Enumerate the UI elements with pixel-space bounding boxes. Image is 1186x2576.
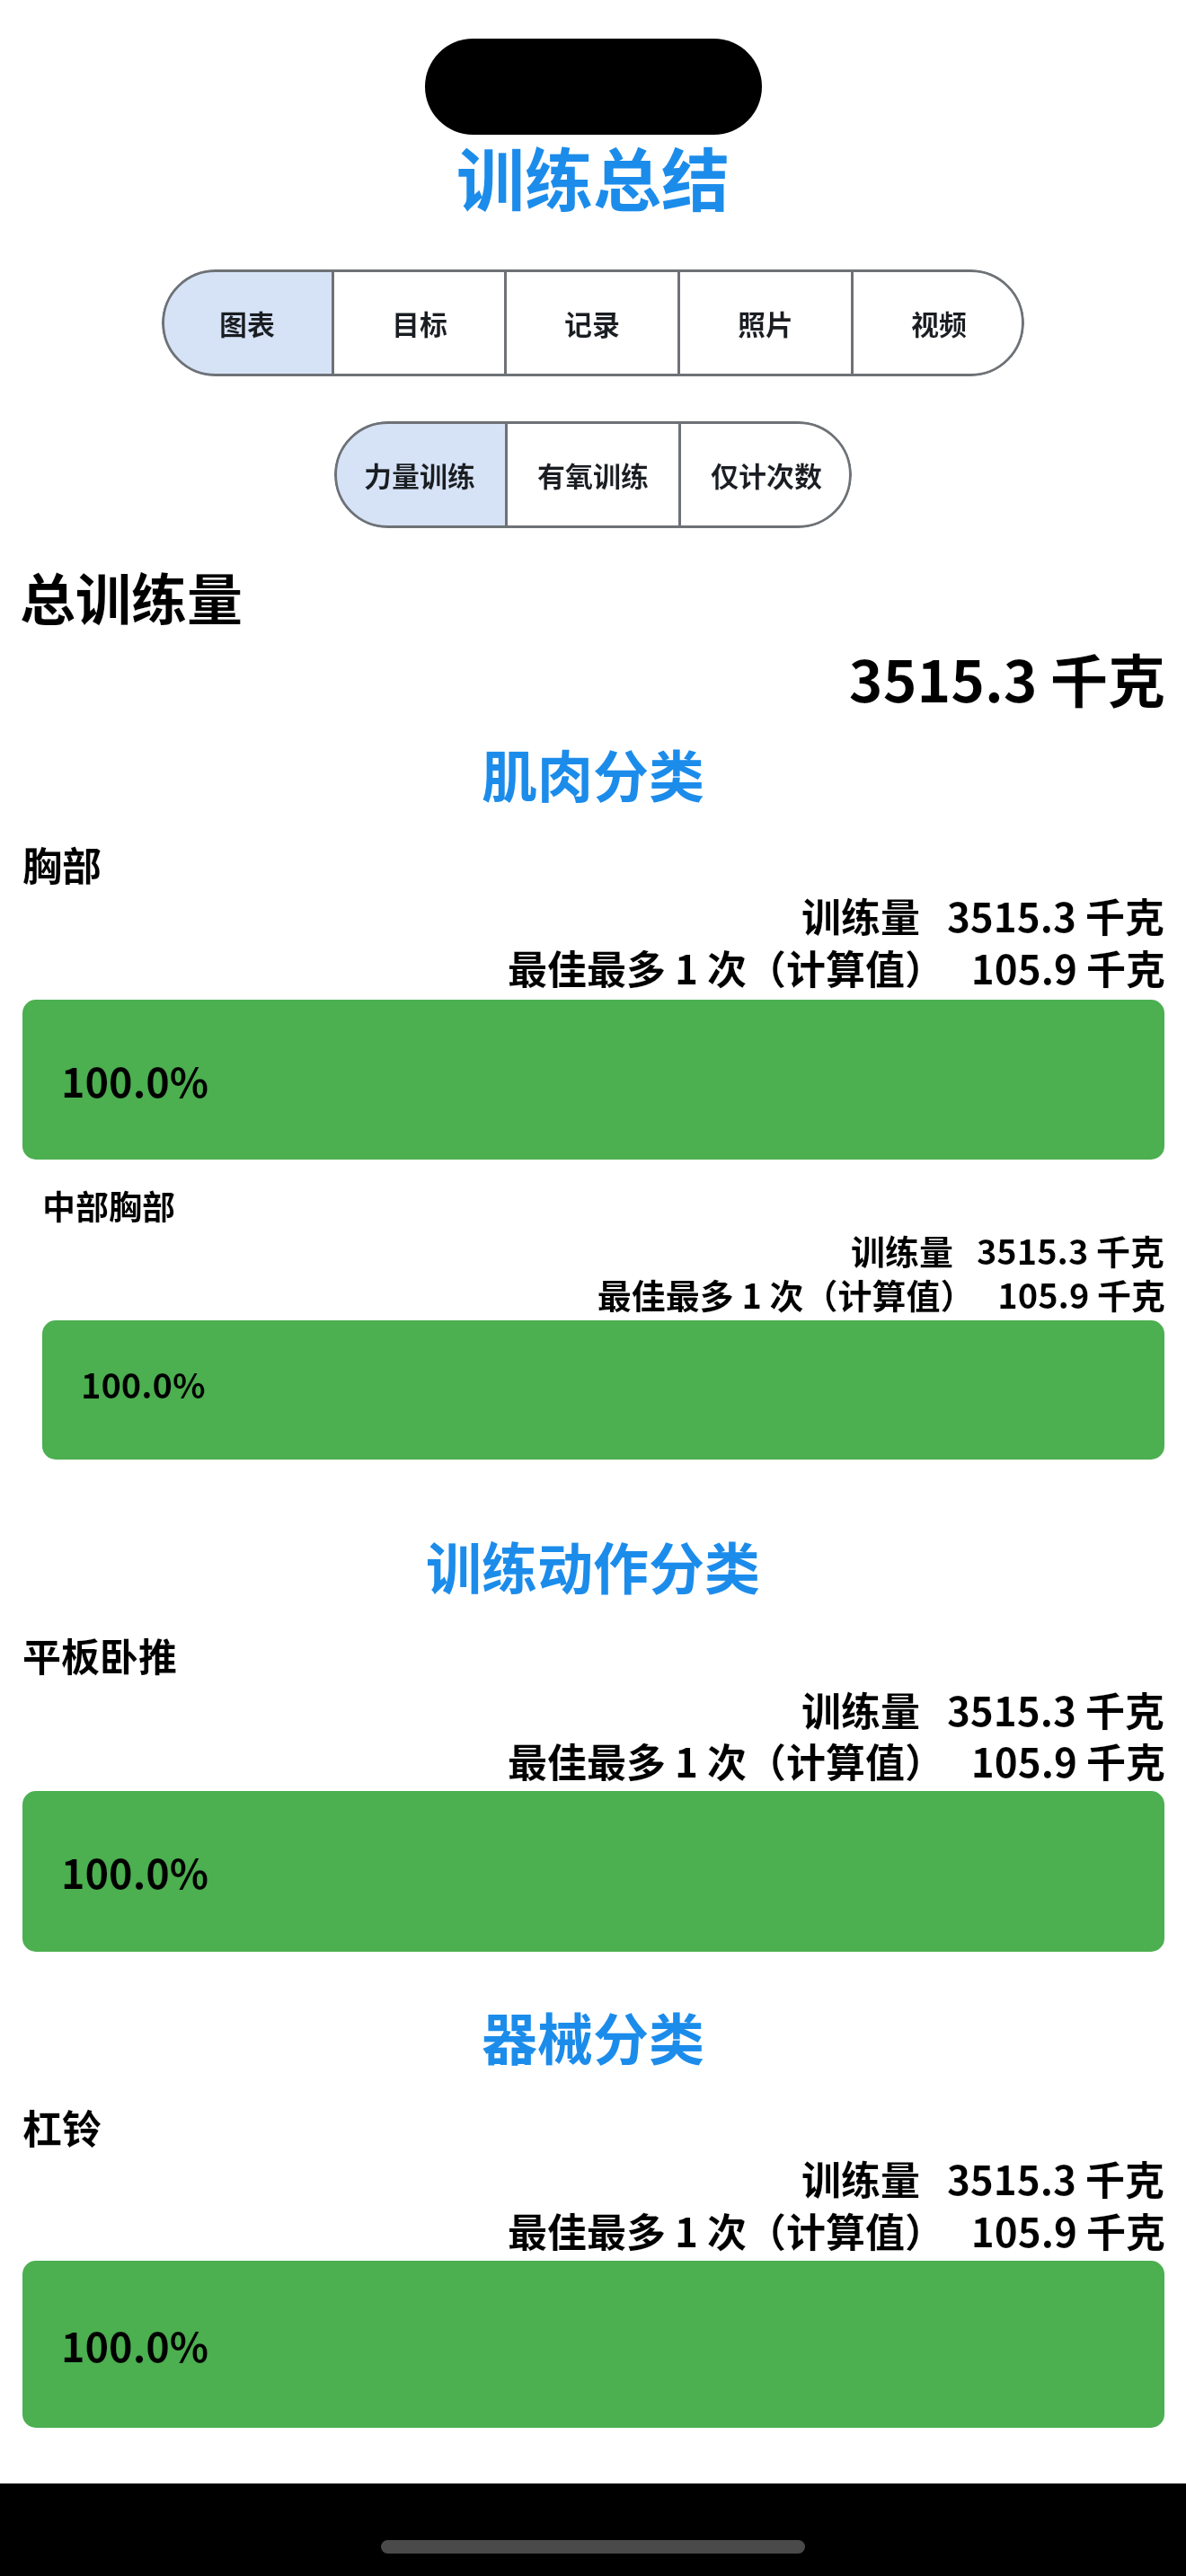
staticText: 最佳最多 1 次（计算值） 105.9 千克 (0, 2201, 1165, 2259)
staticText: 仅计次数 (711, 454, 822, 495)
staticText: 最佳最多 1 次（计算值） 105.9 千克 (0, 1269, 1165, 1319)
staticText: 训练动作分类 (0, 1525, 1186, 1606)
staticText: 杠铃 (22, 2098, 102, 2156)
staticText: 100.0% (61, 1842, 209, 1901)
button[interactable]: 100.0% (22, 2261, 1164, 2428)
staticText: 视频 (911, 303, 967, 343)
staticText: 训练量 3515.3 千克 (0, 1225, 1164, 1275)
staticText: 平板卧推 (22, 1627, 177, 1682)
staticText: 训练总结 (0, 127, 1186, 225)
staticText: 训练量 3515.3 千克 (0, 887, 1164, 944)
button[interactable]: 100.0% (22, 1000, 1164, 1160)
button[interactable]: 视频 (854, 269, 1024, 376)
staticText: 最佳最多 1 次（计算值） 105.9 千克 (0, 939, 1165, 996)
staticText: 肌肉分类 (0, 733, 1186, 814)
staticText: 有氧训练 (537, 454, 649, 495)
button[interactable]: 有氧训练 (508, 421, 678, 528)
button[interactable]: 仅计次数 (681, 421, 852, 528)
staticText: 中部胸部 (42, 1181, 175, 1230)
button[interactable]: 目标 (334, 269, 504, 376)
staticText: 最佳最多 1 次（计算值） 105.9 千克 (0, 1732, 1165, 1789)
button[interactable]: 100.0% (22, 1791, 1164, 1952)
staticText: 100.0% (61, 2316, 209, 2374)
staticText: 器械分类 (0, 1996, 1186, 2077)
staticText: 100.0% (81, 1359, 206, 1408)
staticText: 总训练量 (20, 556, 243, 637)
staticText: 图表 (219, 303, 275, 343)
staticText: 3515.3 千克 (0, 636, 1165, 719)
staticText: 100.0% (61, 1051, 209, 1109)
staticText: 记录 (564, 303, 620, 343)
staticText: 训练量 3515.3 千克 (0, 2149, 1164, 2207)
staticText: 目标 (392, 303, 447, 343)
staticText: 力量训练 (364, 454, 475, 495)
staticText: 照片 (738, 303, 793, 343)
button[interactable]: 100.0% (42, 1320, 1164, 1460)
staticText: 胸部 (22, 835, 102, 893)
other: Camera cutout (425, 39, 762, 135)
button[interactable]: 记录 (507, 269, 677, 376)
staticText: 训练量 3515.3 千克 (0, 1681, 1164, 1738)
button[interactable]: 照片 (680, 269, 851, 376)
button[interactable]: 力量训练 (334, 421, 505, 528)
button[interactable]: 图表 (162, 269, 332, 376)
button[interactable]: Home (381, 2540, 805, 2554)
